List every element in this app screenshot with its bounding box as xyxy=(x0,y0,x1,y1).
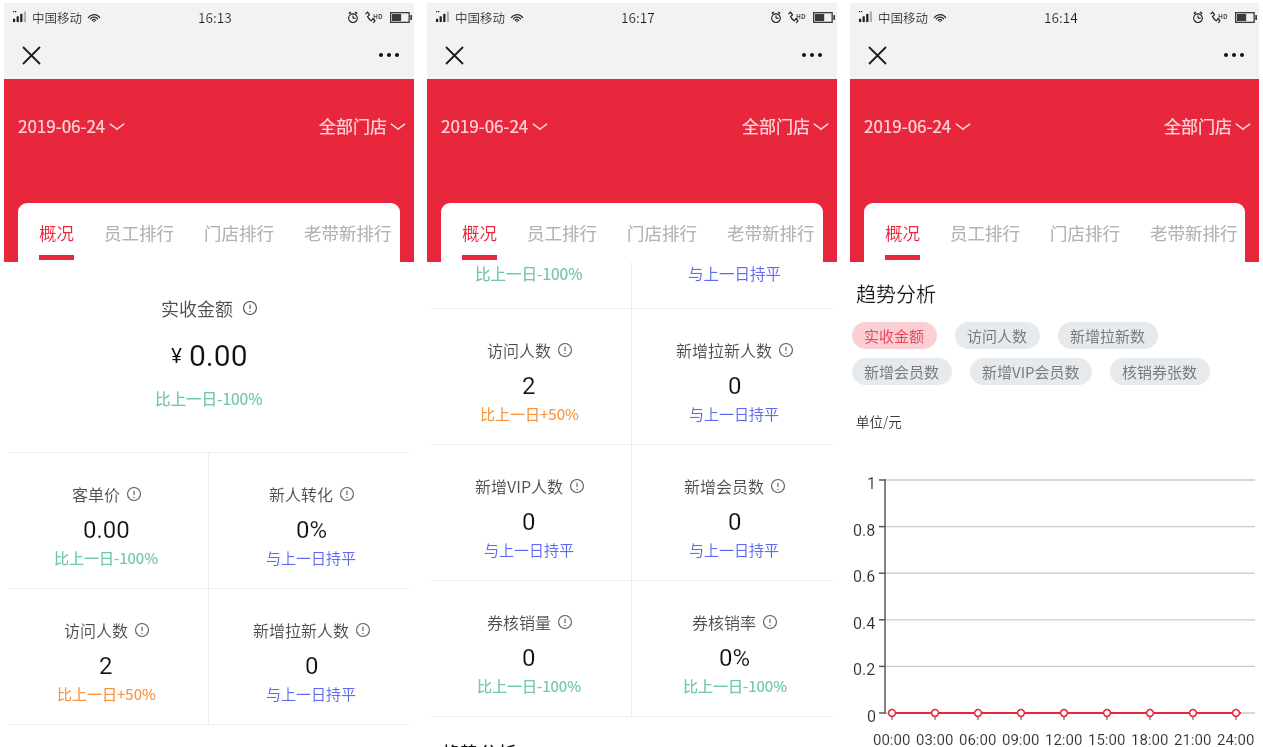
staticText: 16:17 xyxy=(621,7,655,27)
button[interactable]: 全部门店 xyxy=(315,109,410,142)
button[interactable]: 实收金额 xyxy=(4,262,414,452)
staticText: 与上一日持平 xyxy=(484,539,575,561)
button[interactable]: Close xyxy=(859,37,895,73)
staticText: 中国移动 xyxy=(455,8,506,26)
staticText: 新增拉新人数 xyxy=(253,618,350,641)
button[interactable]: 门店排行 xyxy=(189,203,289,262)
button[interactable]: 2019-06-24 xyxy=(860,109,975,142)
button[interactable]: 员工排行 xyxy=(512,203,612,262)
button[interactable]: 新增VIP会员数 xyxy=(970,358,1092,385)
button[interactable]: 全部门店 xyxy=(1160,109,1255,142)
staticText: 老带新排行 xyxy=(727,220,815,245)
staticText: 全部门店 xyxy=(1164,113,1232,138)
staticText: 0% xyxy=(719,644,751,672)
button[interactable]: Close xyxy=(13,37,49,73)
staticText: HD xyxy=(1218,11,1228,20)
button[interactable]: 实收金额 xyxy=(852,322,937,349)
button[interactable]: 新增拉新人数 xyxy=(632,309,837,444)
staticText: 门店排行 xyxy=(204,220,274,245)
button[interactable]: More options xyxy=(1216,37,1252,73)
staticText: 1 xyxy=(867,474,876,493)
staticText: 趋势分析 xyxy=(856,279,936,308)
staticText: 新增会员数 xyxy=(864,361,940,383)
button[interactable]: 概况 xyxy=(447,203,512,262)
button[interactable]: 访问人数 xyxy=(955,322,1040,349)
button[interactable]: Close xyxy=(436,37,472,73)
staticText: 比上一日-100% xyxy=(155,387,263,409)
button[interactable]: 员工排行 xyxy=(89,203,189,262)
button[interactable]: 老带新排行 xyxy=(1135,203,1253,262)
staticText: 与上一日持平 xyxy=(689,403,780,425)
staticText: 全部门店 xyxy=(319,113,387,138)
staticText: 新增拉新人数 xyxy=(676,338,773,361)
staticText: 访问人数 xyxy=(64,618,129,641)
button[interactable]: 新增拉新人数 xyxy=(209,589,414,724)
staticText: 06:00 xyxy=(959,731,997,747)
staticText: 中国移动 xyxy=(878,8,929,26)
staticText: 2019-06-24 xyxy=(864,113,952,138)
button[interactable]: 概况 xyxy=(24,203,89,262)
button[interactable]: 新增会员数 xyxy=(852,358,952,385)
button[interactable]: 访问人数 xyxy=(4,589,208,724)
button[interactable]: 门店排行 xyxy=(612,203,712,262)
button[interactable]: 全部门店 xyxy=(738,109,833,142)
staticText: 0.00 xyxy=(189,338,248,373)
staticText: 全部门店 xyxy=(742,113,810,138)
staticText: 概况 xyxy=(462,220,497,245)
staticText: HD xyxy=(796,11,806,20)
staticText: 比上一日-100% xyxy=(54,547,158,569)
staticText: 18:00 xyxy=(1131,731,1169,747)
staticText: 0 xyxy=(305,652,319,680)
staticText: 比上一日-100% xyxy=(683,675,787,697)
staticText: 员工排行 xyxy=(527,220,597,245)
staticText: 09:00 xyxy=(1002,731,1040,747)
button[interactable]: 老带新排行 xyxy=(289,203,407,262)
button[interactable]: 新增VIP人数 xyxy=(427,445,631,580)
staticText: 15:00 xyxy=(1088,731,1126,747)
button[interactable]: 券核销量 xyxy=(427,581,631,716)
staticText: 趋势分析 xyxy=(441,739,518,747)
staticText: 2 xyxy=(99,652,113,680)
button[interactable]: 核销券张数 xyxy=(1110,358,1210,385)
button[interactable]: 新人转化 xyxy=(209,453,414,588)
button[interactable]: 2019-06-24 xyxy=(14,109,129,142)
button[interactable]: 新增拉新数 xyxy=(1058,322,1158,349)
button[interactable]: 概况 xyxy=(870,203,935,262)
staticText: 与上一日持平 xyxy=(689,539,780,561)
button[interactable]: 访问人数 xyxy=(427,309,631,444)
staticText: 单位/元 xyxy=(856,411,902,431)
staticText: 实收金额 xyxy=(864,325,925,347)
staticText: 概况 xyxy=(885,220,920,245)
staticText: 新增会员数 xyxy=(684,474,765,497)
staticText: 券核销率 xyxy=(692,610,757,633)
staticText: 实收金额 xyxy=(161,295,233,321)
staticText: 与上一日持平 xyxy=(688,262,782,284)
staticText: 核销券张数 xyxy=(1122,361,1198,383)
staticText: 0 xyxy=(522,644,536,672)
staticText: 比上一日+50% xyxy=(480,403,579,425)
staticText: 03:00 xyxy=(916,731,954,747)
staticText: 中国移动 xyxy=(32,8,83,26)
staticText: 0 xyxy=(867,707,876,726)
staticText: 0.2 xyxy=(853,660,876,679)
staticText: 新增VIP会员数 xyxy=(982,361,1080,383)
button[interactable]: 2019-06-24 xyxy=(437,109,552,142)
button[interactable]: 券核销率 xyxy=(632,581,837,716)
staticText: 客单价 xyxy=(72,482,121,505)
staticText: 老带新排行 xyxy=(304,220,392,245)
staticText: 0.00 xyxy=(83,516,130,544)
button[interactable]: 客单价 xyxy=(4,453,208,588)
staticText: 21:00 xyxy=(1174,731,1212,747)
button[interactable]: 新增会员数 xyxy=(632,445,837,580)
staticText: 0.4 xyxy=(853,614,876,633)
staticText: 券核销量 xyxy=(487,610,552,633)
button[interactable]: 门店排行 xyxy=(1035,203,1135,262)
staticText: 0 xyxy=(728,508,742,536)
button[interactable]: More options xyxy=(371,37,407,73)
button[interactable]: 老带新排行 xyxy=(712,203,830,262)
button[interactable]: More options xyxy=(794,37,830,73)
staticText: 16:14 xyxy=(1044,7,1078,27)
button[interactable]: 员工排行 xyxy=(935,203,1035,262)
staticText: 员工排行 xyxy=(104,220,174,245)
staticText: 0.6 xyxy=(853,567,876,586)
